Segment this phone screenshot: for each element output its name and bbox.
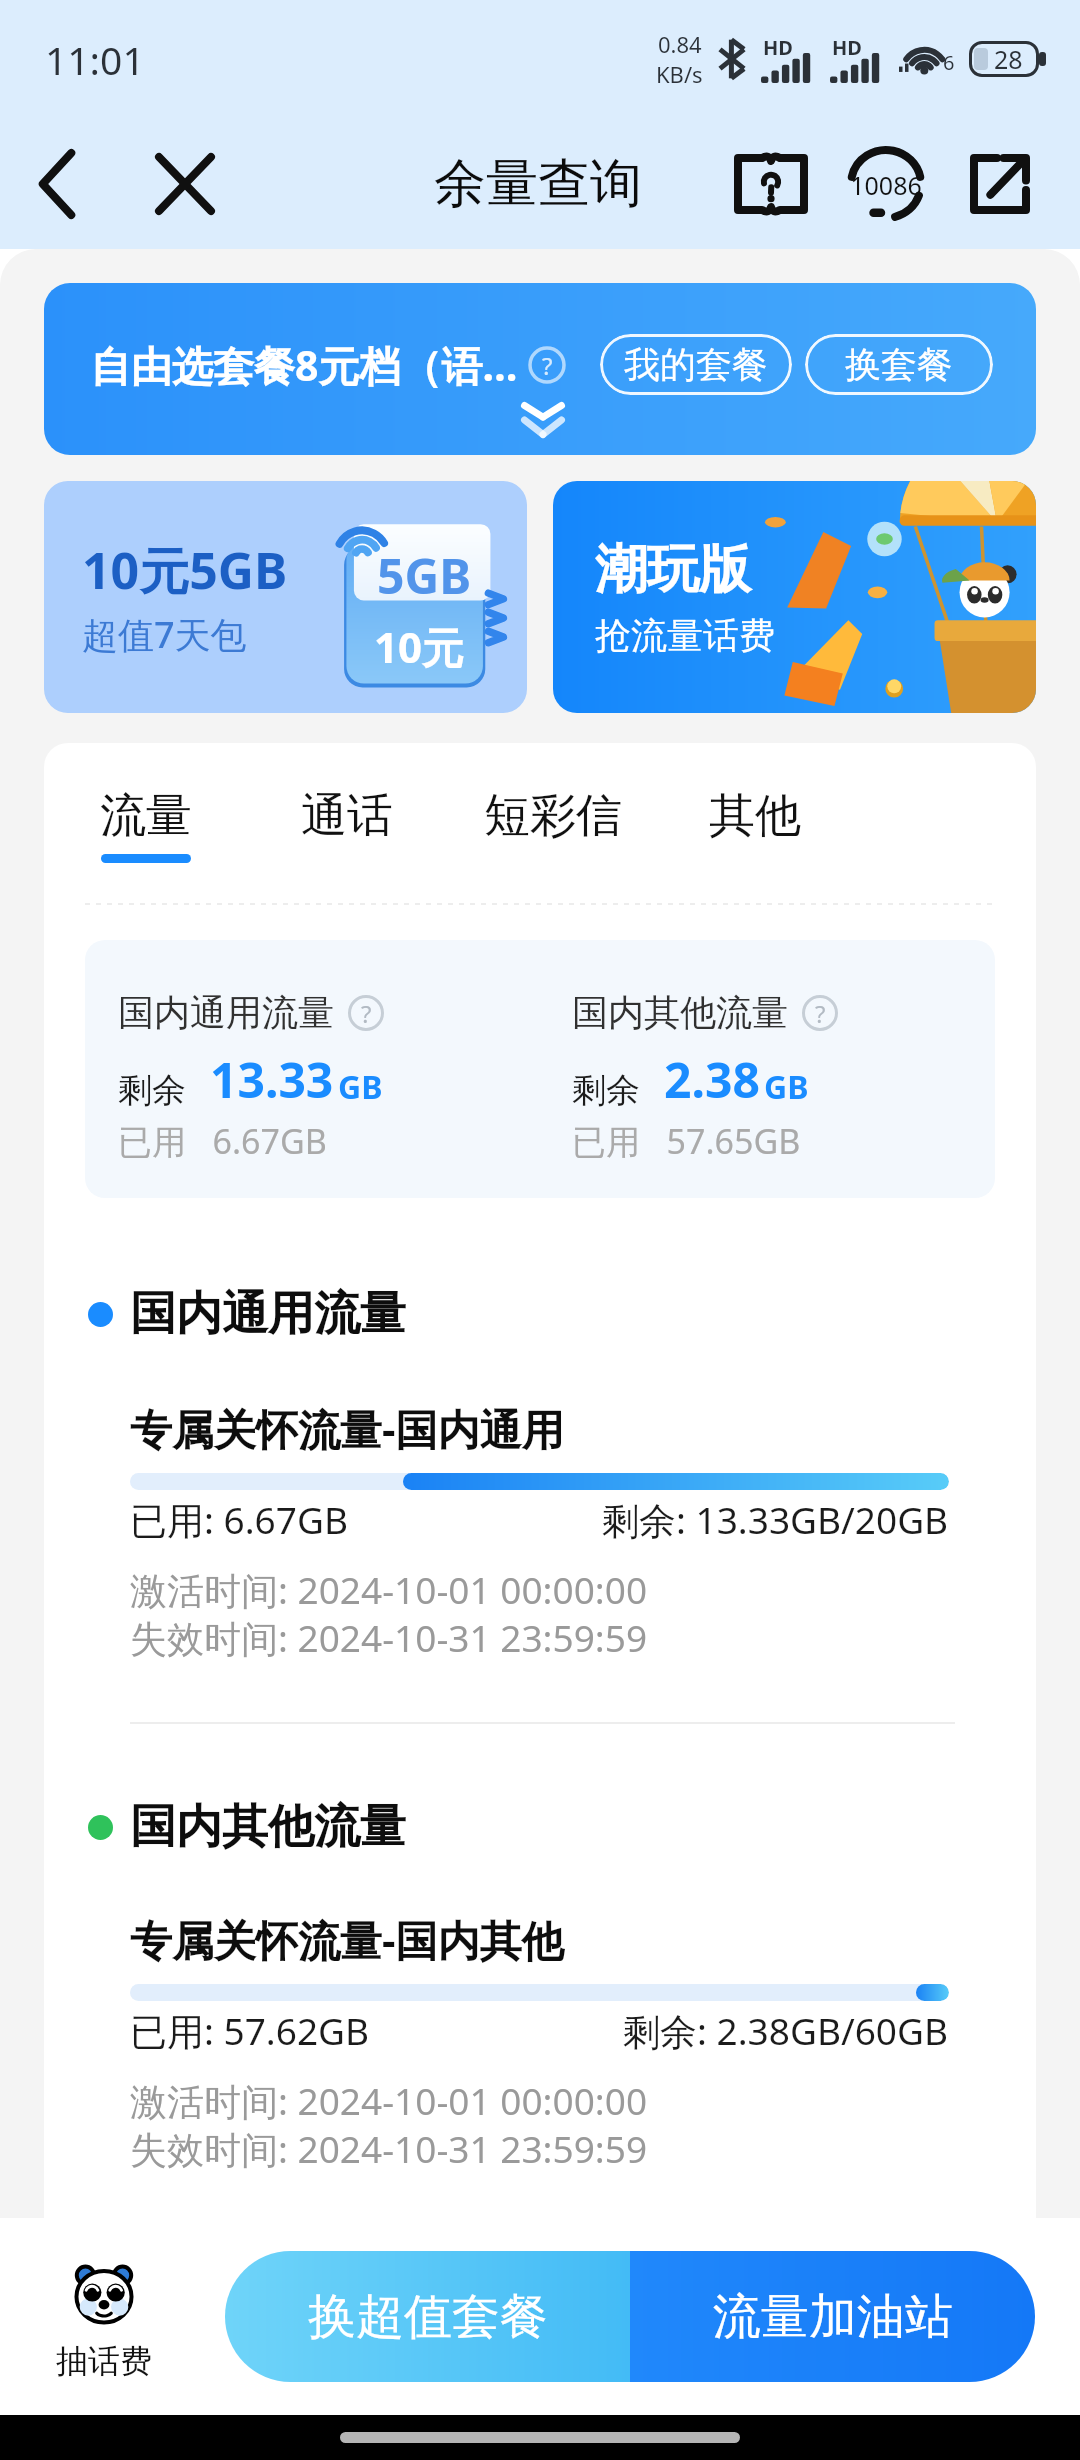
button[interactable]: 流量加油站 [630,2251,1035,2382]
staticText: 激活时间: 2024-10-01 00:00:00 [130,1564,648,1615]
staticText: 潮玩版 [595,537,751,603]
staticText: 5GB [377,543,472,608]
staticText: 通话 [301,787,393,845]
staticText: KB/s [656,59,703,89]
staticText: 10086 [848,168,924,202]
staticText: 剩余: 13.33GB/20GB [602,1494,949,1545]
staticText: GB [764,1065,809,1109]
button[interactable]: 我的套餐 [600,334,792,395]
staticText: 流量加油站 [713,2287,953,2347]
button[interactable]: 10元5GB [44,481,527,713]
button[interactable]: 通话 [301,787,393,863]
staticText: 国内其他流量 [572,990,788,1035]
staticText: HD [763,34,793,61]
button[interactable]: Help [729,142,813,226]
staticText: 流量 [100,787,192,845]
staticText: 换超值套餐 [308,2287,548,2347]
staticText: 10元 [374,618,465,675]
staticText: 短彩信 [484,787,622,845]
staticText: 已用 57.65GB [572,1118,801,1164]
staticText: 已用: 6.67GB [130,1494,348,1545]
staticText: 失效时间: 2024-10-31 23:59:59 [130,2123,648,2174]
staticText: ? [542,349,553,382]
staticText: 激活时间: 2024-10-01 00:00:00 [130,2075,648,2126]
staticText: 抽话费 [56,2341,152,2381]
button[interactable]: 短彩信 [484,787,622,863]
button[interactable]: Info [348,995,384,1031]
staticText: 其他 [709,787,801,845]
button[interactable]: 流量 [100,787,192,863]
staticText: 10元5GB [82,536,288,604]
staticText: 0.84 [658,29,702,59]
staticText: ? [361,997,372,1030]
staticText: 国内通用流量 [130,1285,406,1343]
staticText: 28 [994,42,1023,76]
button[interactable]: Back [15,142,99,226]
staticText: 自由选套餐8元档（语… [90,337,518,393]
button[interactable]: 潮玩版 [553,481,1036,713]
staticText: 专属关怀流量-国内通用 [130,1400,564,1457]
staticText: 超值7天包 [82,610,247,659]
staticText: 剩余: 2.38GB/60GB [623,2005,949,2056]
staticText: 13.33 [210,1047,334,1112]
button[interactable]: 换套餐 [805,334,993,395]
button[interactable]: 换超值套餐 [225,2251,630,2382]
staticText: 剩余 [118,1069,186,1112]
staticText: 11:01 [45,33,145,86]
staticText: 国内其他流量 [130,1798,406,1856]
staticText: 剩余 [572,1069,640,1112]
staticText: 专属关怀流量-国内其他 [130,1911,564,1968]
staticText: 余量查询 [434,151,642,217]
staticText: 换套餐 [845,342,953,387]
staticText: 已用: 57.62GB [130,2005,370,2056]
button[interactable]: 抽话费 [56,2265,152,2381]
staticText: HD [832,34,862,61]
button[interactable]: Close [143,142,227,226]
staticText: 国内通用流量 [118,990,334,1035]
staticText: 2.38 [664,1047,760,1112]
staticText: 我的套餐 [624,342,768,387]
staticText: GB [338,1065,383,1109]
button[interactable]: Call 10086 [844,142,928,226]
staticText: 抢流量话费 [595,613,775,658]
button[interactable]: 自由选套餐8元档（语… [44,283,1036,455]
staticText: 已用 6.67GB [118,1118,327,1164]
button[interactable]: Info [802,995,838,1031]
button[interactable]: 其他 [709,787,801,863]
staticText: 失效时间: 2024-10-31 23:59:59 [130,1612,648,1663]
button[interactable]: Share [958,142,1042,226]
staticText: 6 [943,49,955,76]
staticText: ? [815,997,826,1030]
